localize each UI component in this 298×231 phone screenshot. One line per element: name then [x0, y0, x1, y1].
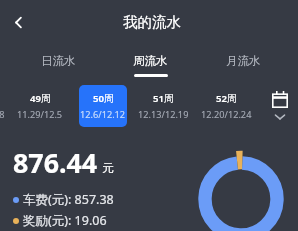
staticText: 周流水 — [133, 54, 168, 68]
button[interactable]: 49周 — [12, 85, 68, 127]
staticText: 11.22/11.28 — [0, 108, 5, 121]
staticText: 月流水 — [226, 54, 261, 68]
staticText: 876.44 — [13, 144, 98, 181]
button[interactable]: Pick date — [262, 86, 298, 128]
button[interactable]: 周流水 — [104, 54, 197, 86]
staticText: 12.6/12.12 — [80, 108, 126, 121]
staticText: 49周 — [30, 92, 51, 105]
staticText: 我的流水 — [123, 13, 181, 31]
button[interactable]: 日流水 — [12, 54, 104, 86]
button[interactable]: 50周 — [79, 85, 127, 127]
button[interactable]: 51周 — [135, 85, 191, 127]
staticText: 车费(元): 857.38 — [23, 191, 114, 208]
button[interactable]: 车费(元): 857.38 — [13, 191, 114, 208]
button[interactable]: 奖励(元): 19.06 — [13, 212, 107, 229]
button[interactable]: 月流水 — [197, 54, 290, 86]
staticText: 12.13/12.19 — [138, 108, 189, 121]
staticText: 50周 — [93, 92, 114, 105]
button[interactable]: 52周 — [198, 85, 254, 127]
button[interactable]: Back — [3, 7, 33, 37]
staticText: 52周 — [216, 92, 237, 105]
staticText: 11.29/12.5 — [17, 108, 63, 121]
staticText: 51周 — [153, 92, 174, 105]
staticText: 12.20/12.24 — [201, 108, 252, 121]
staticText: 奖励(元): 19.06 — [23, 212, 107, 229]
button[interactable]: 48周 — [0, 85, 7, 127]
staticText: 元 — [102, 161, 114, 175]
staticText: 日流水 — [41, 54, 76, 68]
